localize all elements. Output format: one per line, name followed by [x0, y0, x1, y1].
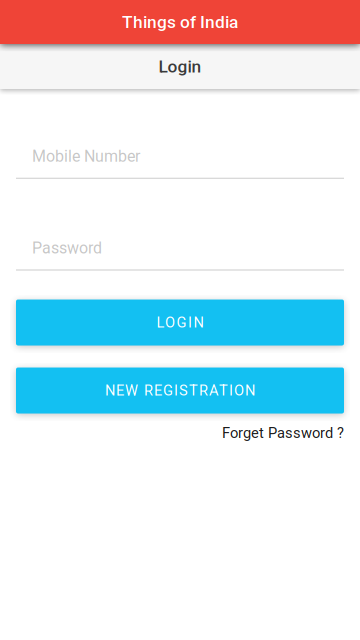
staticText: LOGIN: [156, 314, 203, 331]
staticText: Forget Password ?: [222, 424, 344, 442]
button[interactable]: NEW REGISTRATION: [16, 367, 344, 413]
button[interactable]: Mobile Number: [16, 147, 344, 179]
staticText: Mobile Number: [32, 147, 140, 166]
staticText: Login: [158, 56, 201, 77]
button[interactable]: LOGIN: [16, 299, 344, 345]
button[interactable]: Forget Password ?: [222, 424, 344, 442]
button[interactable]: Password: [16, 239, 344, 271]
staticText: Things of India: [122, 12, 238, 32]
staticText: Password: [32, 239, 102, 258]
staticText: NEW REGISTRATION: [105, 382, 255, 399]
